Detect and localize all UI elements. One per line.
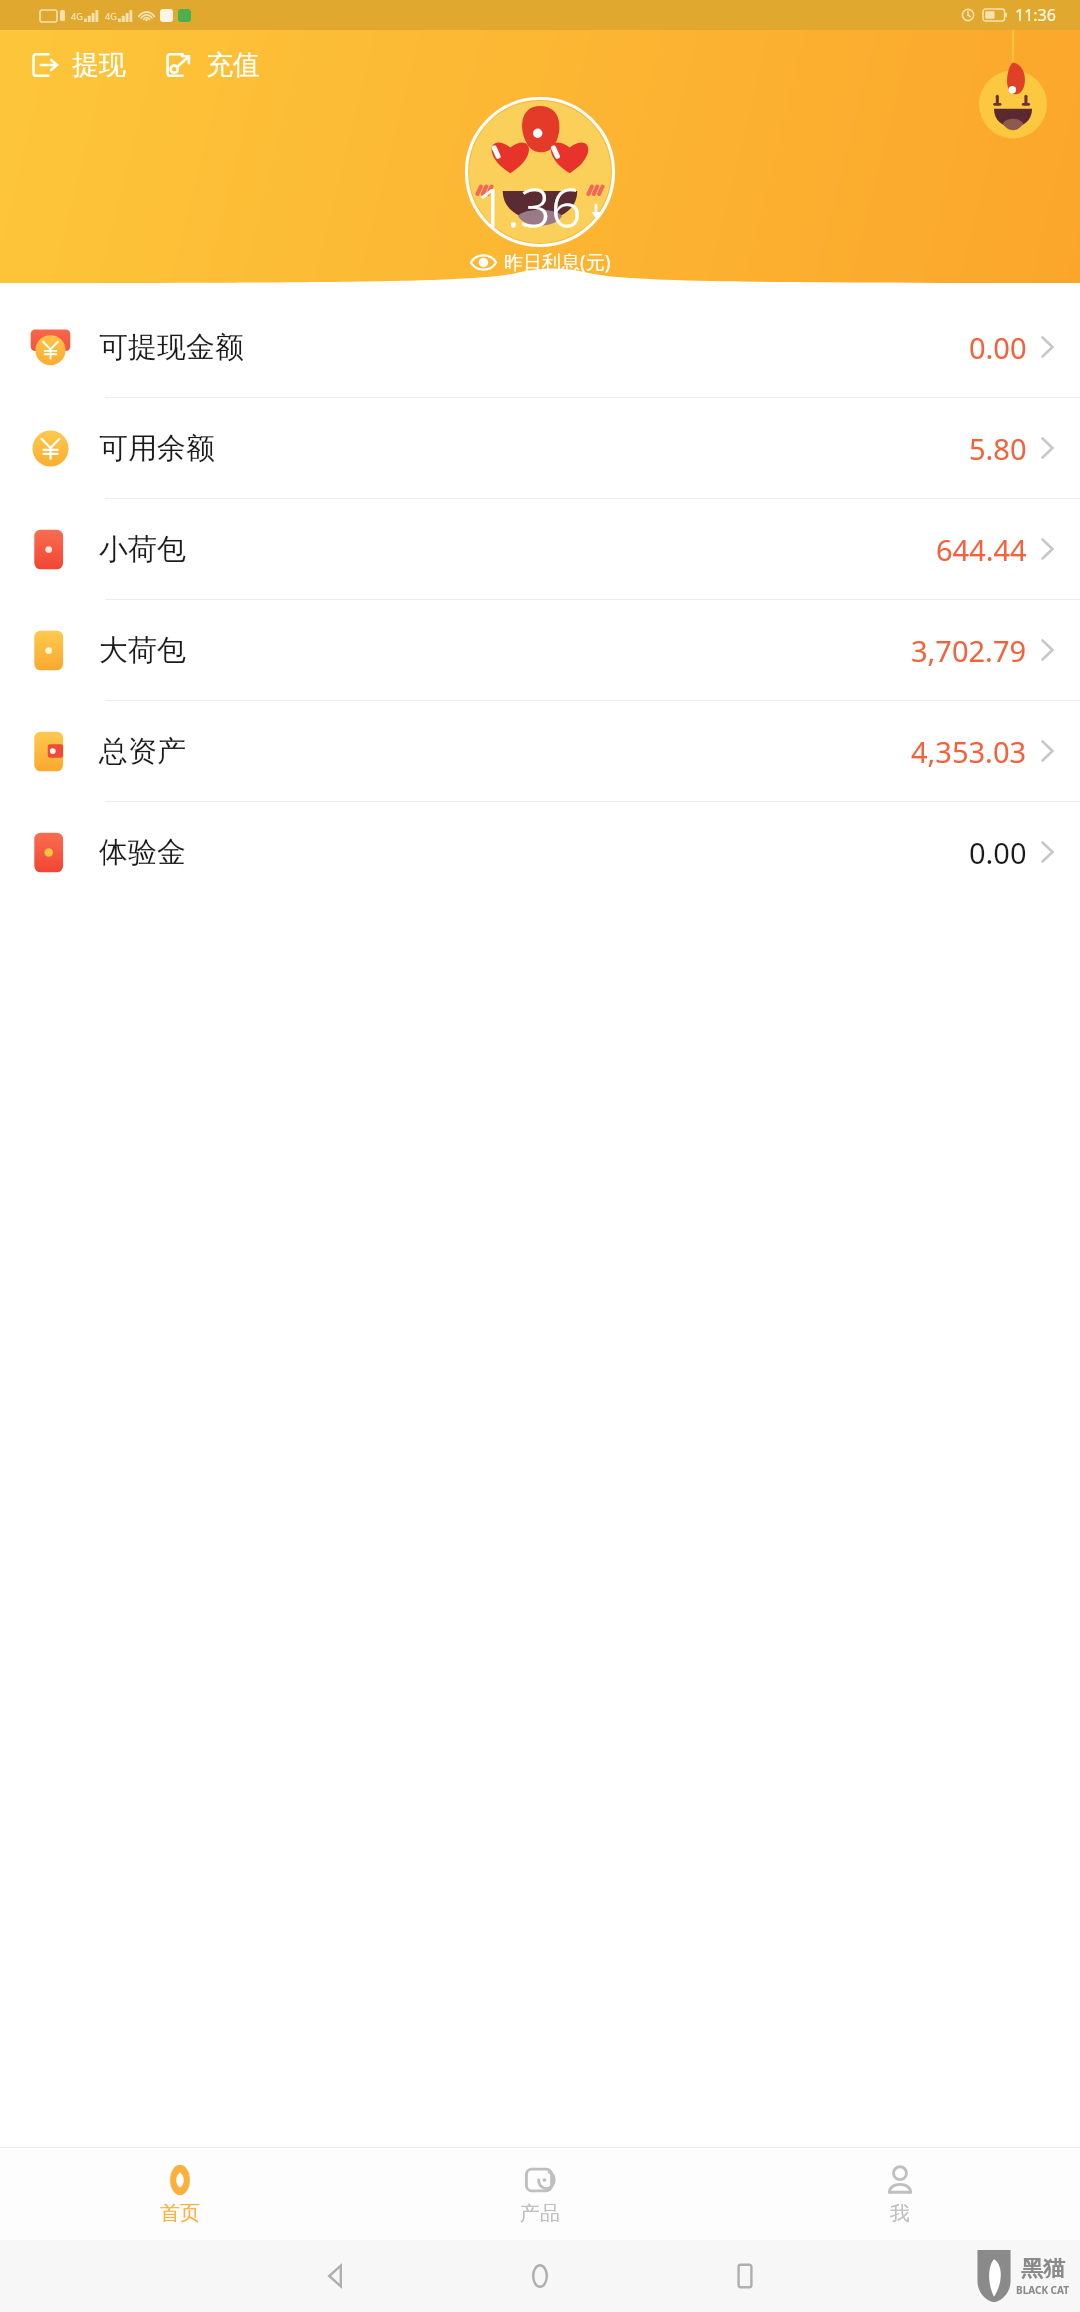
- staticText: 产品: [520, 2201, 560, 2226]
- staticText: 昨日利息(元): [504, 249, 611, 275]
- button[interactable]: 我: [720, 2157, 1080, 2232]
- button[interactable]: 体验金: [0, 802, 1080, 902]
- staticText: 0.00: [969, 328, 1027, 367]
- staticText: 11:36: [1015, 4, 1056, 26]
- staticText: 1.36: [476, 169, 582, 243]
- button[interactable]: 昨日利息(元): [470, 249, 611, 275]
- button[interactable]: 可提现金额: [0, 297, 1080, 397]
- button[interactable]: 首页: [0, 2157, 360, 2232]
- button[interactable]: 提现: [30, 44, 126, 86]
- button[interactable]: Back: [316, 2256, 356, 2296]
- staticText: 大荷包: [99, 632, 186, 669]
- button[interactable]: Mascot face: [464, 96, 616, 248]
- staticText: 小荷包: [99, 531, 186, 568]
- staticText: 3,702.79: [911, 631, 1027, 670]
- staticText: 首页: [160, 2201, 200, 2226]
- button[interactable]: Recents: [725, 2256, 765, 2296]
- staticText: 0.00: [969, 833, 1027, 872]
- button[interactable]: 大荷包: [0, 600, 1080, 700]
- staticText: BLACK CAT: [1016, 2283, 1070, 2297]
- button[interactable]: 产品: [360, 2157, 720, 2232]
- staticText: 总资产: [99, 733, 186, 770]
- staticText: 4,353.03: [911, 732, 1027, 771]
- button[interactable]: Home: [520, 2256, 560, 2296]
- staticText: 可用余额: [99, 430, 215, 467]
- staticText: 可提现金额: [99, 329, 244, 366]
- staticText: 黑猫: [1021, 2255, 1065, 2283]
- button[interactable]: Mascot: [976, 30, 1050, 148]
- staticText: 5.80: [969, 429, 1027, 468]
- button[interactable]: 可用余额: [0, 398, 1080, 498]
- staticText: 提现: [72, 48, 126, 82]
- staticText: 我: [890, 2201, 910, 2226]
- staticText: 体验金: [99, 834, 186, 871]
- staticText: 644.44: [936, 530, 1027, 569]
- button[interactable]: 小荷包: [0, 499, 1080, 599]
- button[interactable]: 总资产: [0, 701, 1080, 801]
- staticText: 4G: [105, 10, 117, 22]
- staticText: 充值: [206, 48, 260, 82]
- button[interactable]: 充值: [164, 44, 260, 86]
- staticText: 4G: [71, 10, 83, 22]
